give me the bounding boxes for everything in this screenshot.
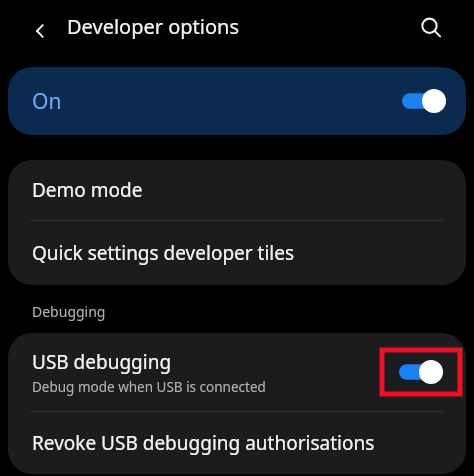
staticText: Quick settings developer tiles	[32, 240, 295, 266]
staticText: Demo mode	[32, 177, 143, 203]
staticText: Revoke USB debugging authorisations	[32, 430, 375, 456]
staticText: Debugging	[32, 302, 106, 321]
button[interactable]: On	[8, 67, 466, 135]
staticText: USB debugging	[32, 349, 172, 375]
button[interactable]: Revoke USB debugging authorisations	[8, 412, 466, 474]
staticText: On	[32, 87, 62, 116]
staticText: Debug mode when USB is connected	[32, 378, 266, 396]
button[interactable]: USB debugging	[8, 333, 466, 411]
button[interactable]: Demo mode	[8, 160, 466, 220]
button[interactable]: Back	[22, 12, 60, 50]
button[interactable]: Search	[411, 8, 451, 48]
button[interactable]: Quick settings developer tiles	[8, 221, 466, 285]
staticText: Developer options	[67, 13, 240, 40]
